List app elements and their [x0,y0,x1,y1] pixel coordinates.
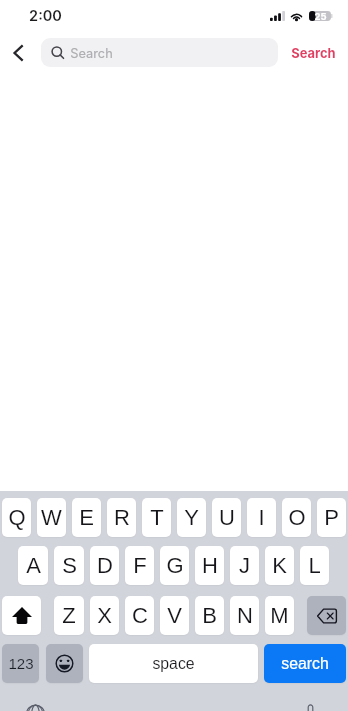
button[interactable]: X [90,596,119,635]
button[interactable]: S [54,546,84,585]
button[interactable]: N [230,596,259,635]
button[interactable]: Dictate [299,693,321,711]
staticText: Z [62,603,76,628]
button[interactable]: D [90,546,119,585]
staticText: Y [184,505,199,530]
button[interactable]: L [300,546,329,585]
button[interactable]: Search [279,38,348,67]
staticText: J [239,553,250,578]
button[interactable]: Backspace [307,596,346,635]
button[interactable]: Y [177,498,206,537]
staticText: U [219,505,235,530]
staticText: L [308,553,321,578]
button[interactable]: K [265,546,294,585]
staticText: 25 [314,11,327,21]
button[interactable]: Q [2,498,31,537]
button[interactable]: Search [41,38,278,67]
button[interactable]: E [72,498,101,537]
staticText: B [202,603,217,628]
staticText: G [166,553,184,578]
button[interactable]: A [18,546,48,585]
button[interactable]: R [107,498,136,537]
staticText: N [237,603,253,628]
button[interactable]: J [230,546,259,585]
staticText: Search [291,46,336,62]
button[interactable]: I [247,498,276,537]
staticText: search [281,655,329,673]
staticText: X [97,603,112,628]
staticText: 2:00 [29,7,62,25]
staticText: space [152,655,195,673]
staticText: A [26,553,41,578]
button[interactable]: M [265,596,294,635]
button[interactable]: Emoji [46,644,83,683]
staticText: E [79,505,94,530]
staticText: S [62,553,77,578]
button[interactable]: F [125,546,154,585]
button[interactable]: space [89,644,258,683]
staticText: 123 [8,655,34,672]
button[interactable]: G [160,546,189,585]
button[interactable]: W [37,498,66,537]
staticText: K [272,553,287,578]
staticText: H [202,553,218,578]
button[interactable]: B [195,596,224,635]
button[interactable]: 123 [2,644,39,683]
staticText: D [97,553,113,578]
staticText: P [324,505,339,530]
staticText: T [150,505,164,530]
button[interactable]: Change keyboard [24,693,47,711]
button[interactable]: V [160,596,189,635]
button[interactable]: T [142,498,171,537]
button[interactable]: P [317,498,346,537]
staticText: R [114,505,130,530]
staticText: O [288,505,306,530]
staticText: C [132,603,148,628]
staticText: Q [8,505,26,530]
staticText: W [41,505,62,530]
button[interactable]: Z [54,596,84,635]
button[interactable]: H [195,546,224,585]
staticText: I [258,505,265,530]
button[interactable]: O [282,498,311,537]
staticText: M [270,603,289,628]
button[interactable]: Shift [2,596,41,635]
staticText: Search [70,46,113,61]
staticText: F [133,553,147,578]
button[interactable]: search [264,644,346,683]
button[interactable]: C [125,596,154,635]
staticText: V [167,603,182,628]
button[interactable]: Back [3,38,33,68]
button[interactable]: U [212,498,241,537]
